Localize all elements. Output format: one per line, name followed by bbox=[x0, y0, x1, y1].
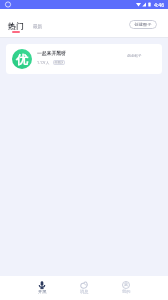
staticText: 热门 bbox=[8, 21, 24, 31]
button[interactable]: 优 bbox=[6, 44, 162, 74]
staticText: 我的 bbox=[122, 289, 131, 294]
button[interactable]: 热门 bbox=[8, 21, 24, 33]
staticText: 开黑区 bbox=[54, 61, 64, 65]
staticText: 创建圈子 bbox=[134, 22, 152, 28]
staticText: 消息 bbox=[80, 289, 89, 294]
button[interactable]: 消息 bbox=[63, 276, 105, 300]
button[interactable]: 最新 bbox=[33, 24, 43, 30]
staticText: 4:46 bbox=[154, 1, 165, 8]
staticText: 优 bbox=[16, 52, 28, 67]
button[interactable]: 创建圈子 bbox=[129, 20, 157, 29]
staticText: 46条帖子 bbox=[127, 53, 142, 58]
button[interactable]: 开黑 bbox=[21, 276, 63, 300]
staticText: 1.1万人 bbox=[37, 60, 50, 65]
staticText: 最新 bbox=[33, 24, 43, 30]
staticText: 开黑 bbox=[38, 289, 47, 294]
button[interactable]: 我的 bbox=[105, 276, 147, 300]
staticText: 一起来开黑呀 bbox=[37, 50, 66, 56]
